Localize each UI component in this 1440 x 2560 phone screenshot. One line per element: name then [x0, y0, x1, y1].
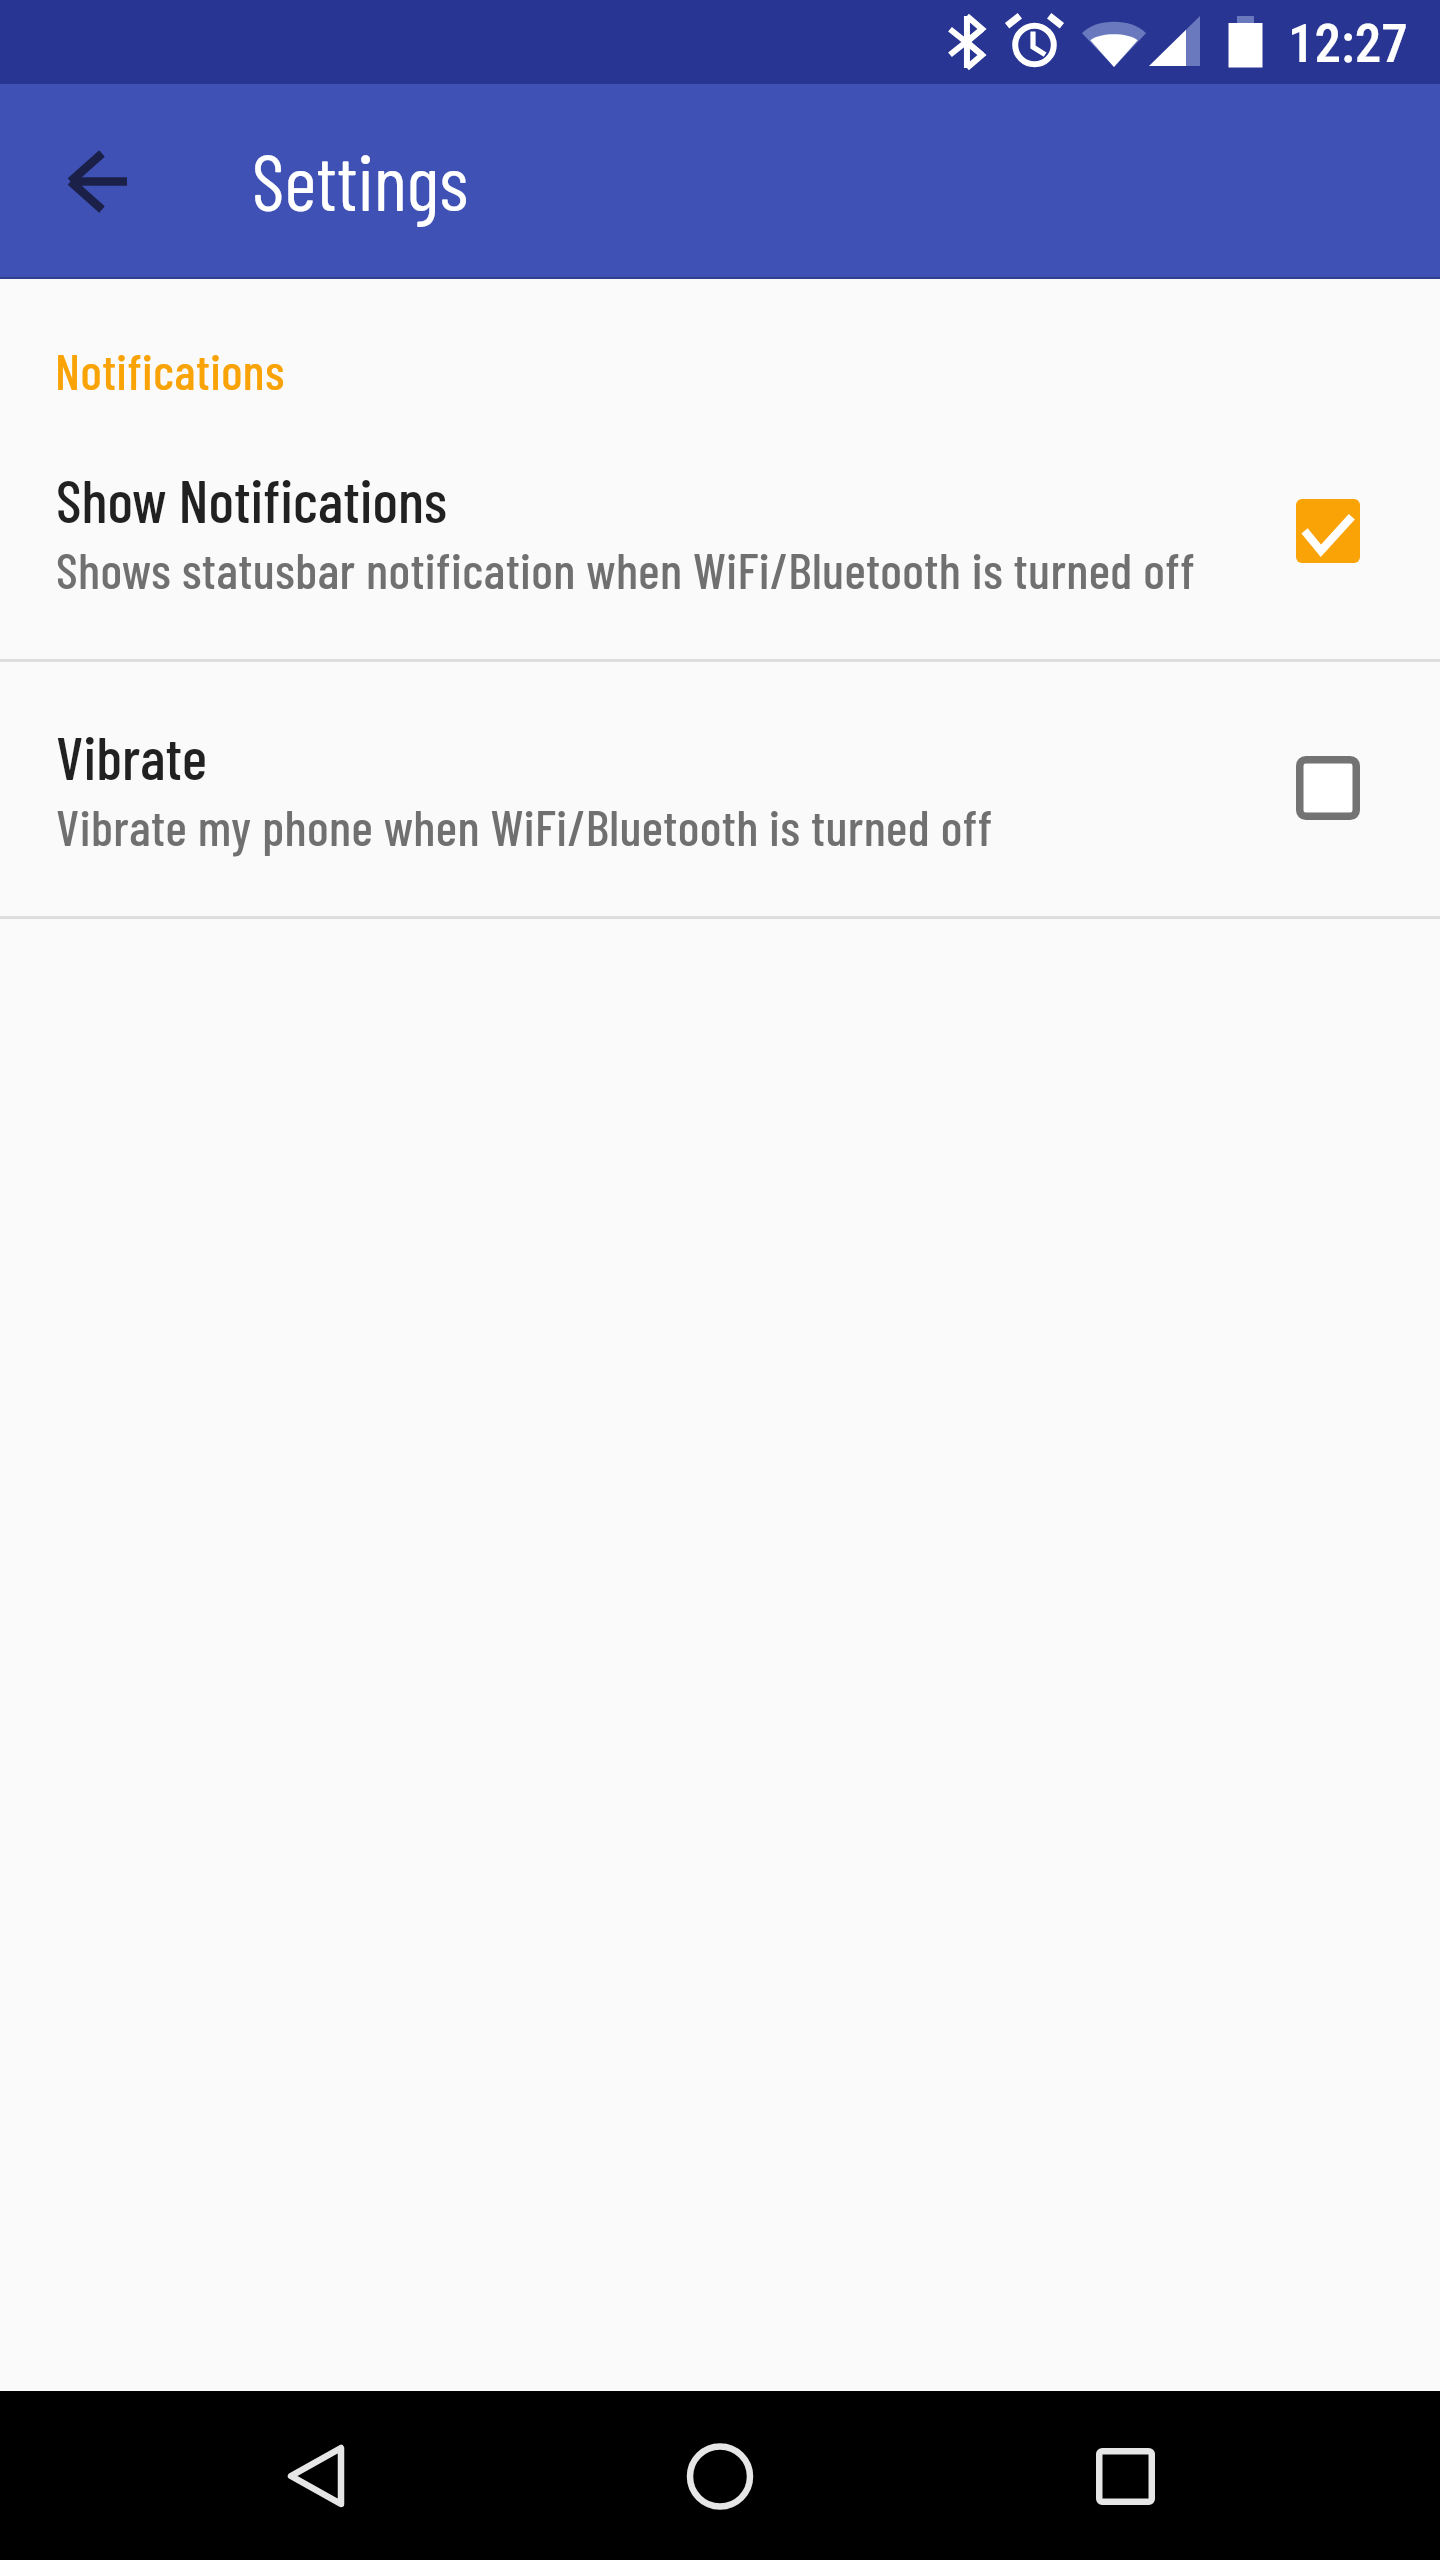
button[interactable]: Show Notifications: [0, 461, 1440, 657]
staticText: Vibrate my phone when WiFi/Bluetooth is …: [56, 795, 993, 856]
button[interactable]: Back: [39, 122, 159, 242]
button[interactable]: Home: [620, 2391, 820, 2560]
staticText: Settings: [252, 133, 469, 227]
staticText: Notifications: [55, 340, 285, 400]
button[interactable]: Back: [216, 2391, 416, 2560]
button[interactable]: Recent apps: [1025, 2391, 1225, 2560]
button[interactable]: Show Notifications, checked: [1296, 499, 1360, 563]
button[interactable]: Vibrate: [0, 718, 1440, 914]
staticText: Vibrate: [56, 720, 208, 792]
staticText: Shows statusbar notification when WiFi/B…: [56, 538, 1196, 599]
staticText: Show Notifications: [56, 463, 448, 535]
staticText: 12:27: [1288, 13, 1408, 75]
button[interactable]: Vibrate, not checked: [1296, 756, 1360, 820]
